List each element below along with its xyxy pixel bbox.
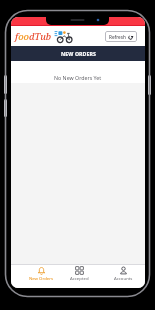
staticText: Accounts: [114, 275, 133, 281]
button[interactable]: Accepted: [57, 266, 101, 281]
staticText: Accepted: [70, 275, 89, 281]
button[interactable]: Refresh: [105, 31, 137, 42]
staticText: NEW ORDERS: [61, 50, 96, 57]
staticText: Refresh: [109, 34, 126, 40]
staticText: New Orders: [29, 275, 54, 281]
staticText: No New Orders Yet: [54, 74, 102, 81]
button[interactable]: Accounts: [101, 266, 145, 281]
staticText: foodTub: [15, 30, 52, 43]
button[interactable]: New Orders: [19, 266, 63, 281]
